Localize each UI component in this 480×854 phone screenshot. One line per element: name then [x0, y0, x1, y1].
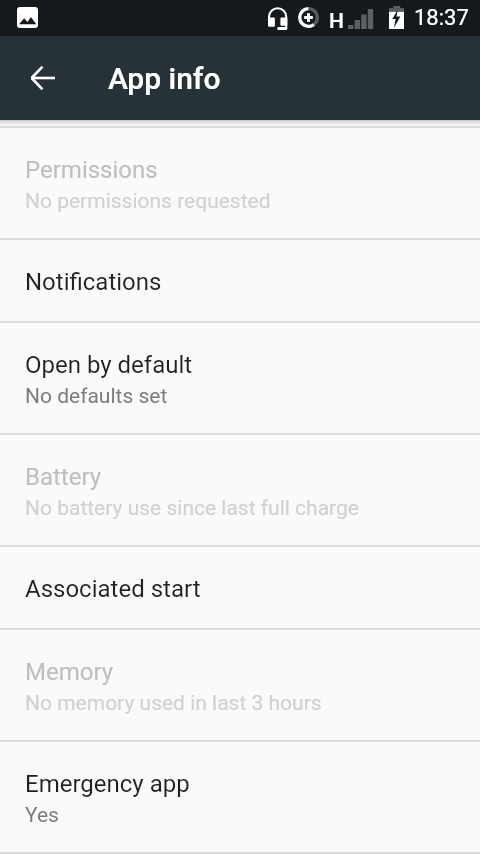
staticText: Permissions	[25, 156, 158, 184]
staticText: Notifications	[25, 268, 162, 296]
button[interactable]: Open by default	[0, 323, 480, 433]
button[interactable]: Navigate up	[18, 54, 66, 102]
staticText: Memory	[25, 658, 114, 686]
button[interactable]: Associated start	[0, 547, 480, 628]
staticText: Yes	[25, 803, 59, 828]
staticText: Associated start	[25, 575, 201, 603]
button[interactable]: Memory	[0, 630, 480, 740]
staticText: H	[329, 9, 344, 34]
button[interactable]: Permissions	[0, 128, 480, 238]
staticText: Open by default	[25, 351, 193, 379]
button[interactable]: Notifications	[0, 240, 480, 321]
staticText: Battery	[25, 463, 102, 491]
button[interactable]: Emergency app	[0, 742, 480, 852]
staticText: No permissions requested	[25, 189, 271, 214]
staticText: No memory used in last 3 hours	[25, 691, 322, 716]
staticText: 18:37	[414, 5, 469, 31]
button[interactable]: Battery	[0, 435, 480, 545]
staticText: No battery use since last full charge	[25, 496, 359, 521]
staticText: App info	[108, 61, 221, 96]
staticText: Emergency app	[25, 770, 190, 798]
staticText: No defaults set	[25, 384, 168, 409]
